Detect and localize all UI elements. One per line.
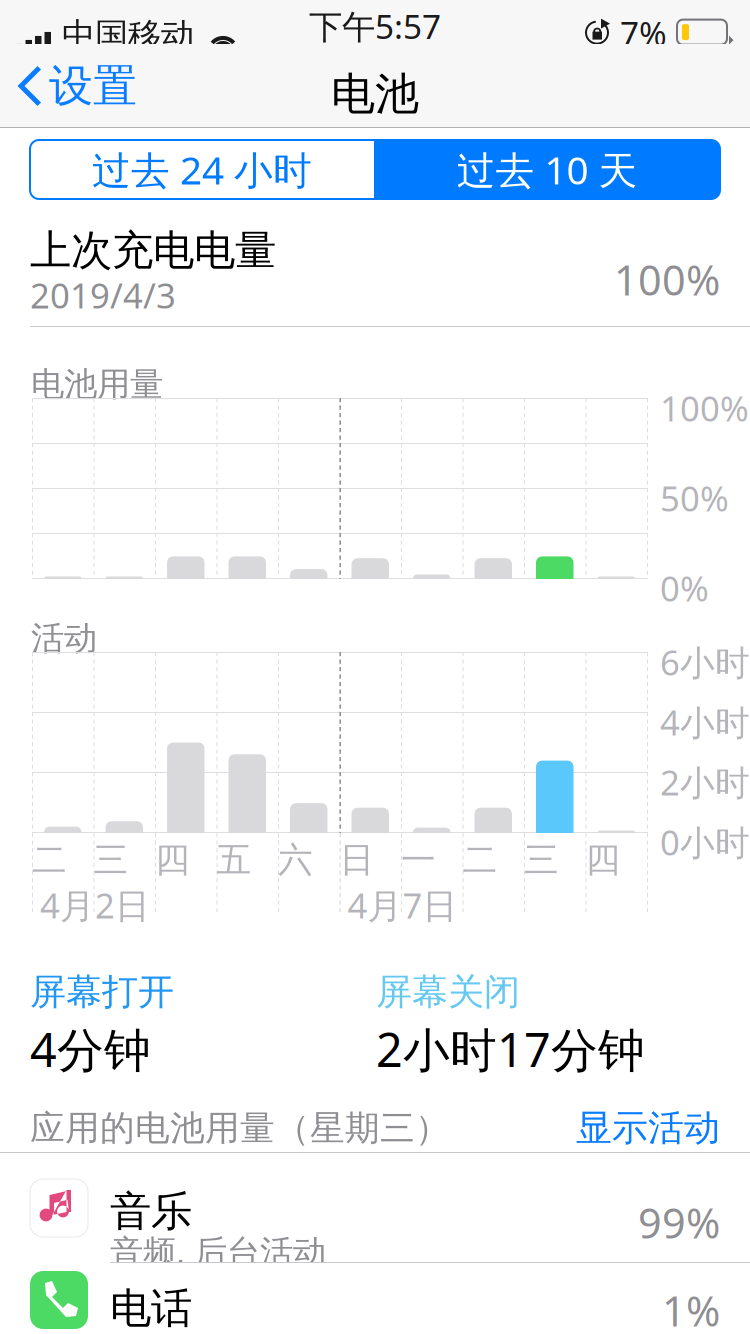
staticText: 上次充电电量 — [30, 225, 276, 276]
staticText: 四 — [585, 839, 620, 881]
staticText: 应用的电池用量（星期三） — [30, 1107, 450, 1150]
staticText: 过去 24 小时 — [92, 144, 312, 195]
staticText: 中国移动 — [62, 15, 194, 56]
staticText: 二 — [462, 839, 497, 881]
staticText: 电话 — [110, 1283, 192, 1334]
button[interactable]: 过去 24 小时 — [30, 140, 374, 199]
staticText: 活动 — [31, 618, 97, 659]
staticText: 4月7日 — [347, 882, 457, 928]
staticText: 100% — [660, 385, 749, 431]
staticText: 设置 — [49, 59, 137, 113]
staticText: 6小时 — [660, 639, 750, 685]
staticText: 显示活动 — [576, 1106, 720, 1150]
staticText: 99% — [638, 1195, 720, 1250]
staticText: 屏幕关闭 — [376, 970, 520, 1014]
staticText: 4小时 — [660, 699, 750, 745]
button[interactable]: 电话 — [0, 1263, 750, 1334]
staticText: 0小时 — [660, 819, 750, 865]
staticText: 二 — [32, 839, 67, 881]
staticText: 一 — [401, 839, 436, 881]
staticText: 电池 — [331, 67, 419, 121]
button[interactable]: 过去 10 天 — [374, 140, 720, 199]
staticText: 电池用量 — [31, 364, 163, 405]
staticText: 2019/4/3 — [30, 272, 176, 318]
staticText: 4月2日 — [40, 882, 150, 928]
staticText: 下午5:57 — [309, 4, 441, 48]
staticText: 7% — [620, 11, 667, 55]
button[interactable]: 显示活动 — [576, 1106, 720, 1150]
staticText: 音乐 — [110, 1186, 192, 1237]
staticText: 三 — [524, 839, 559, 881]
staticText: 2小时17分钟 — [376, 1018, 645, 1080]
staticText: 六 — [278, 839, 313, 881]
staticText: 三 — [93, 839, 128, 881]
staticText: 1% — [662, 1283, 720, 1334]
button[interactable]: 设置 — [0, 44, 151, 128]
staticText: 4分钟 — [30, 1018, 151, 1080]
staticText: 四 — [155, 839, 190, 881]
staticText: 日 — [339, 839, 374, 881]
button[interactable]: 音乐 — [0, 1153, 750, 1262]
staticText: 五 — [216, 839, 251, 881]
staticText: 过去 10 天 — [456, 144, 637, 195]
staticText: 音频, 后台活动 — [110, 1229, 326, 1273]
staticText: 2小时 — [660, 759, 750, 805]
staticText: 100% — [614, 252, 720, 307]
staticText: 50% — [660, 475, 729, 521]
staticText: 0% — [660, 565, 709, 611]
staticText: 屏幕打开 — [30, 970, 174, 1014]
